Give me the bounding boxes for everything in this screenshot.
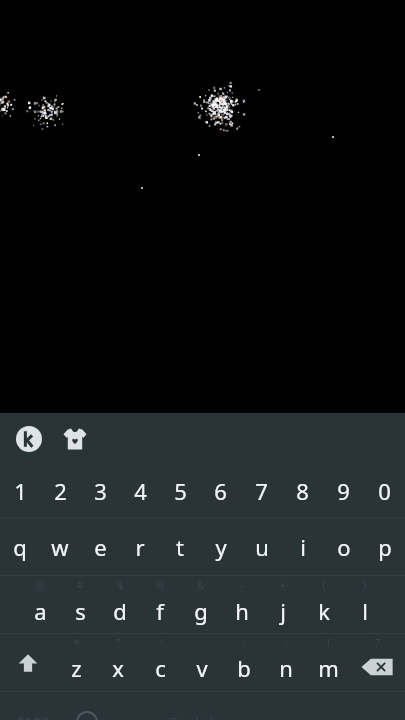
button[interactable]: * xyxy=(55,634,97,691)
button[interactable]: i xyxy=(282,518,323,575)
button[interactable]: w xyxy=(40,518,80,575)
button[interactable]: r xyxy=(120,518,160,575)
staticText: w xyxy=(51,532,69,562)
button[interactable]: Emoji xyxy=(66,692,107,720)
staticText: k xyxy=(318,596,330,626)
staticText: 5 xyxy=(174,476,187,506)
staticText: m xyxy=(318,653,339,683)
button[interactable]: 4 xyxy=(120,465,160,517)
staticText: 3 xyxy=(94,476,107,506)
button[interactable]: & xyxy=(180,576,221,633)
button[interactable]: 9 xyxy=(323,465,364,517)
staticText: f xyxy=(156,596,164,626)
button[interactable]: Keyboard settings xyxy=(12,422,46,456)
button[interactable]: q xyxy=(0,518,40,575)
button[interactable]: ; xyxy=(265,634,307,691)
button[interactable]: 5 xyxy=(160,465,200,517)
staticText: s xyxy=(75,596,86,626)
staticText: d xyxy=(113,596,127,626)
button[interactable]: $ xyxy=(100,576,140,633)
button[interactable]: % xyxy=(140,576,180,633)
staticText: ; xyxy=(285,635,288,650)
staticText: " xyxy=(116,635,121,650)
button[interactable]: e xyxy=(80,518,120,575)
staticText: t xyxy=(176,532,184,562)
staticText: j xyxy=(280,596,286,626)
button[interactable]: o xyxy=(323,518,364,575)
button[interactable]: y xyxy=(200,518,241,575)
staticText: ? xyxy=(375,635,380,650)
staticText: 2 xyxy=(54,476,67,506)
staticText: q xyxy=(13,532,27,562)
staticText: y xyxy=(215,532,227,562)
button[interactable]: 8 xyxy=(282,465,323,517)
staticText: 6 xyxy=(214,476,227,506)
staticText: : xyxy=(243,635,246,650)
other: Backspace xyxy=(360,656,394,678)
staticText: i xyxy=(300,532,306,562)
staticText: 1 xyxy=(14,476,27,506)
staticText: * xyxy=(73,635,80,650)
staticText: ( xyxy=(322,577,326,592)
staticText: a xyxy=(34,596,47,626)
button[interactable]: 7 xyxy=(241,465,282,517)
button[interactable]: # xyxy=(60,576,100,633)
button[interactable]: Stickers xyxy=(58,422,92,456)
button[interactable]: ? xyxy=(349,634,405,691)
button[interactable]: ' xyxy=(139,634,181,691)
staticText: 8 xyxy=(296,476,309,506)
staticText: ' xyxy=(159,635,162,650)
staticText: ?123 xyxy=(17,712,50,720)
staticText: p xyxy=(378,532,392,562)
staticText: 0 xyxy=(378,476,391,506)
button[interactable]: " xyxy=(97,634,139,691)
staticText: @ xyxy=(35,577,45,592)
staticText: r xyxy=(135,532,145,562)
staticText: g xyxy=(194,596,208,626)
button[interactable]: ( xyxy=(303,576,344,633)
staticText: z xyxy=(71,653,82,683)
staticText: o xyxy=(337,532,351,562)
staticText: % xyxy=(155,577,165,592)
staticText: ! xyxy=(327,635,330,650)
button[interactable]: ) xyxy=(344,576,385,633)
staticText: 9 xyxy=(337,476,350,506)
button[interactable]: 2 xyxy=(40,465,80,517)
button[interactable]: + xyxy=(262,576,303,633)
staticText: 7 xyxy=(255,476,268,506)
staticText: e xyxy=(94,532,107,562)
staticText: u xyxy=(255,532,269,562)
button[interactable]: Shift xyxy=(0,634,55,691)
staticText: n xyxy=(279,653,293,683)
button[interactable]: ! xyxy=(307,634,349,691)
button[interactable]: t xyxy=(160,518,200,575)
staticText: ) xyxy=(363,577,367,592)
button[interactable]: @ xyxy=(20,576,60,633)
staticText: # xyxy=(76,577,84,592)
staticText: h xyxy=(235,596,249,626)
staticText: & xyxy=(196,577,205,592)
staticText: $ xyxy=(117,577,124,592)
staticText: 4 xyxy=(134,476,147,506)
button[interactable]: p xyxy=(364,518,405,575)
button[interactable]: : xyxy=(223,634,265,691)
button[interactable]: 0 xyxy=(364,465,405,517)
button[interactable]: - xyxy=(221,576,262,633)
button[interactable]: 3 xyxy=(80,465,120,517)
button[interactable]: v xyxy=(181,634,223,691)
button[interactable]: 1 xyxy=(0,465,40,517)
staticText: b xyxy=(237,653,251,683)
button[interactable]: 6 xyxy=(200,465,241,517)
staticText: c xyxy=(155,653,166,683)
button[interactable]: u xyxy=(241,518,282,575)
staticText: l xyxy=(362,596,368,626)
staticText: v xyxy=(196,653,208,683)
staticText: + xyxy=(279,577,286,592)
